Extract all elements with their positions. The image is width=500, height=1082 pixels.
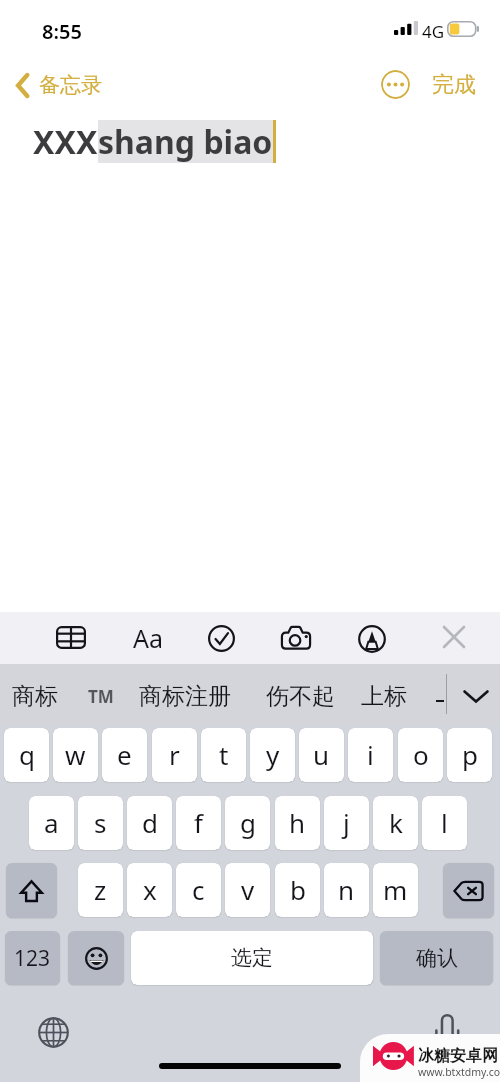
button[interactable]: u [299,728,344,782]
button[interactable]: Checklist [204,621,238,655]
staticText: 8:55 [42,18,82,45]
button[interactable]: Markup [354,621,389,656]
button[interactable]: 伤不起 [260,675,329,717]
staticText: 4G [422,20,445,43]
button[interactable]: Aa [124,620,172,655]
staticText: i [367,737,374,772]
button[interactable]: j [324,796,369,850]
staticText: w [65,737,86,772]
staticText: p [462,737,478,772]
button[interactable]: r [152,728,197,782]
staticText: h [289,805,306,840]
staticText: Aa [133,621,164,655]
button[interactable]: More candidates [454,680,498,712]
staticText: y [266,737,280,772]
staticText: q [19,737,35,772]
staticText: c [192,872,205,907]
staticText: b [290,872,306,907]
staticText: v [241,872,255,907]
button[interactable]: n [324,863,369,917]
button[interactable]: i [348,728,393,782]
staticText: 上标 [361,682,407,711]
button[interactable]: Camera [275,620,316,655]
button[interactable]: e [102,728,147,782]
button[interactable]: o [398,728,443,782]
button[interactable]: 完成 [424,64,484,106]
button[interactable]: More options [381,70,410,99]
staticText: g [240,805,256,840]
button[interactable]: y [250,728,295,782]
button[interactable]: a [29,796,74,850]
button[interactable]: Close keyboard [437,620,471,654]
button[interactable]: Note body [0,110,500,612]
staticText: k [389,805,403,840]
staticText: m [383,872,408,907]
button[interactable]: Emoji [68,931,124,985]
staticText: r [169,737,180,772]
staticText: o [413,737,429,772]
button[interactable]: c [176,863,221,917]
button[interactable]: d [127,796,172,850]
staticText: shang biao [98,120,273,163]
button[interactable]: m [373,863,418,917]
button[interactable]: s [78,796,123,850]
staticText: d [142,805,158,840]
button[interactable]: x [127,863,172,917]
button[interactable]: g [225,796,270,850]
button[interactable]: l [422,796,467,850]
staticText: 备忘录 [39,72,102,98]
staticText: 完成 [432,71,476,99]
staticText: 伤不起 [266,682,335,711]
button[interactable]: Backspace [443,863,494,918]
button[interactable]: w [53,728,98,782]
button[interactable]: Table [50,620,92,655]
button[interactable]: 确认 [380,931,493,985]
button[interactable]: t [201,728,246,782]
staticText: 商标注册 [139,682,231,711]
staticText: l [441,805,448,840]
staticText: www.btxtdmy.com [418,1065,500,1079]
staticText: t [219,737,229,772]
staticText: TM [88,685,114,707]
button[interactable]: v [225,863,270,917]
staticText: a [44,805,59,840]
button[interactable]: 商标注册 [133,675,225,717]
button[interactable]: 123 [5,931,60,985]
staticText: j [343,805,350,840]
button[interactable]: z [78,863,123,917]
staticText: 冰糖安卓网 [418,1046,498,1066]
button[interactable]: 商标 [6,675,52,717]
staticText: e [117,737,132,772]
button[interactable]: b [275,863,320,917]
button[interactable]: 上标 [355,675,401,717]
button[interactable]: q [4,728,49,782]
staticText: f [194,805,203,840]
staticText: 选定 [231,945,273,971]
staticText: 123 [14,944,51,973]
staticText: u [313,737,330,772]
button[interactable]: k [373,796,418,850]
button[interactable]: Switch keyboard [36,1015,70,1049]
staticText: z [94,872,107,907]
button[interactable]: 备忘录 [14,64,102,106]
staticText: 确认 [416,945,458,971]
staticText: x [143,872,157,907]
staticText: s [94,805,107,840]
button[interactable]: p [447,728,492,782]
staticText: n [338,872,355,907]
button[interactable]: Dictate [432,1012,462,1046]
staticText: XXX [33,120,98,163]
button[interactable]: f [176,796,221,850]
button[interactable]: TM [87,685,115,707]
button[interactable]: h [275,796,320,850]
button[interactable]: Shift [6,863,57,918]
staticText: 商标 [12,682,58,711]
button[interactable]: 选定 [131,931,373,985]
